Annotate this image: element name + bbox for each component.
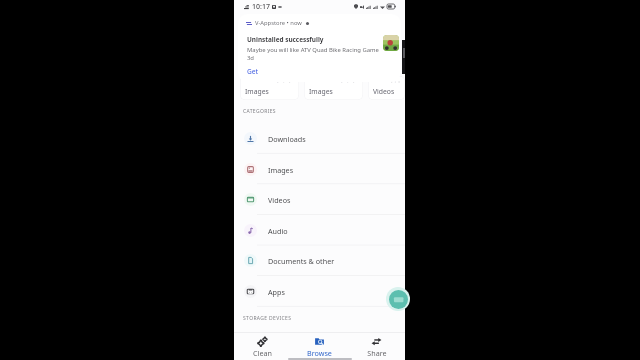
staticText: Images — [268, 165, 294, 175]
button[interactable]: Get — [247, 67, 259, 76]
button[interactable]: Audio — [234, 215, 405, 246]
button[interactable]: Browse — [291, 336, 348, 358]
staticText: Videos — [373, 87, 395, 96]
staticText: V-Appstore • now — [255, 19, 302, 27]
staticText: Clean — [253, 348, 272, 358]
staticText: 10:17 — [252, 2, 270, 12]
staticText: Browse — [307, 348, 332, 358]
button[interactable]: Clean — [234, 336, 291, 358]
button[interactable]: Share — [348, 336, 405, 358]
button[interactable]: Downloads — [234, 123, 405, 154]
button[interactable]: V-Appstore • now — [238, 14, 401, 82]
staticText: STORAGE DEVICES — [243, 315, 292, 322]
staticText: Downloads — [268, 134, 306, 144]
staticText: Images — [245, 87, 269, 96]
staticText: Videos — [268, 195, 291, 205]
staticText: Maybe you will like ATV Quad Bike Racing… — [247, 46, 380, 62]
button[interactable]: Images — [234, 154, 405, 185]
staticText: Audio — [268, 226, 288, 236]
staticText: Images — [309, 87, 333, 96]
button[interactable]: Documents & other — [234, 245, 405, 276]
staticText: Apps — [268, 287, 285, 297]
staticText: Documents & other — [268, 256, 335, 266]
button[interactable]: Videos — [368, 76, 405, 100]
button[interactable]: Images — [240, 76, 299, 100]
button[interactable]: Clean storage — [389, 290, 408, 309]
button[interactable]: Videos — [234, 184, 405, 215]
staticText: Share — [367, 348, 387, 358]
staticText: CATEGORIES — [243, 108, 276, 115]
staticText: Uninstalled successfully — [247, 35, 324, 44]
button[interactable]: Apps — [234, 276, 405, 307]
button[interactable]: Images — [304, 76, 363, 100]
